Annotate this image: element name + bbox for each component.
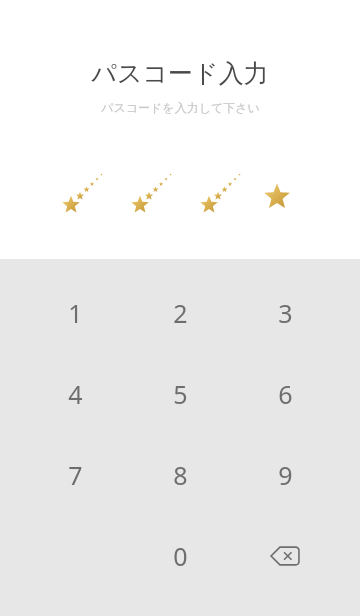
staticText: 5 <box>173 377 188 411</box>
staticText: 4 <box>68 377 83 411</box>
staticText: 8 <box>173 458 188 492</box>
staticText: 1 <box>68 296 83 330</box>
staticText: 2 <box>173 296 188 330</box>
staticText: パスコード入力 <box>91 58 269 89</box>
staticText: 9 <box>278 458 293 492</box>
button[interactable]: 1 <box>25 272 125 353</box>
button[interactable]: 8 <box>130 434 230 515</box>
button[interactable]: Backspace <box>235 515 335 596</box>
button[interactable]: 7 <box>25 434 125 515</box>
staticText: 7 <box>68 458 83 492</box>
staticText: 6 <box>278 377 293 411</box>
button[interactable]: 2 <box>130 272 230 353</box>
staticText: パスコードを入力して下さい <box>101 100 260 115</box>
staticText: 3 <box>278 296 293 330</box>
button[interactable]: 5 <box>130 353 230 434</box>
button[interactable]: 3 <box>235 272 335 353</box>
button[interactable]: 6 <box>235 353 335 434</box>
button[interactable]: 0 <box>130 515 230 596</box>
button[interactable]: 4 <box>25 353 125 434</box>
staticText: 0 <box>173 539 188 573</box>
button[interactable]: 9 <box>235 434 335 515</box>
